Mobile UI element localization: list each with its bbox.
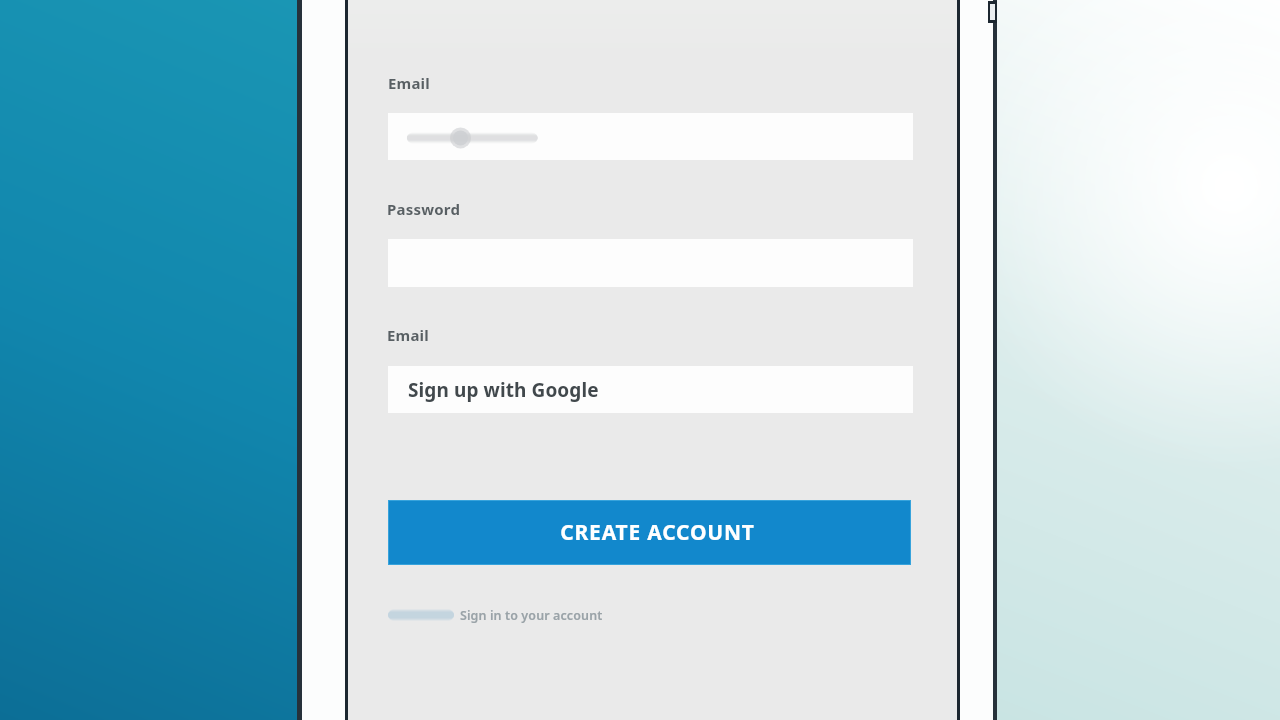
button[interactable]: Sign up with Google [388,366,913,413]
button[interactable]: Already have an account? Sign in [388,603,603,627]
staticText: Sign up with Google [408,377,599,403]
button[interactable] [388,113,913,160]
staticText: Sign in to your account [460,607,603,624]
button[interactable]: CREATE ACCOUNT [388,500,911,565]
staticText: Email [387,325,429,345]
staticText: Password [387,199,461,219]
staticText: CREATE ACCOUNT [560,518,755,547]
staticText: Email [388,73,430,93]
other: Power button [988,1,997,23]
